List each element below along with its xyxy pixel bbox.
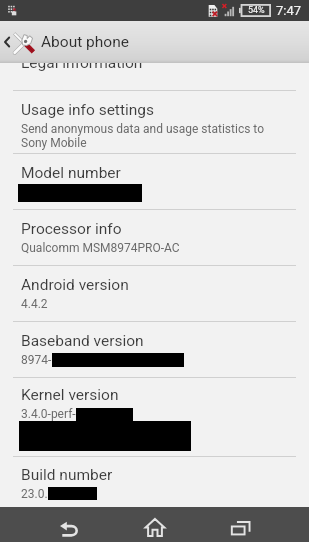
button[interactable]: Baseband version	[0, 322, 309, 377]
button[interactable]: Processor info	[0, 210, 309, 265]
staticText: Send anonymous data and usage statistics…	[21, 122, 264, 136]
button[interactable]: Build number	[0, 457, 309, 507]
staticText: Baseband version	[21, 332, 144, 350]
button[interactable]: Android version	[0, 266, 309, 321]
staticText: 8974-	[21, 353, 52, 367]
staticText: Kernel version	[21, 386, 119, 404]
staticText: Processor info	[21, 220, 122, 238]
staticText: Model number	[21, 164, 121, 182]
button[interactable]: Recent apps	[208, 507, 272, 542]
staticText: 23.0.	[21, 487, 48, 500]
staticText: Qualcomm MSM8974PRO-AC	[21, 241, 180, 255]
button[interactable]: Model number	[0, 154, 309, 209]
button[interactable]: Legal information	[0, 21, 309, 90]
staticText: 4.4.2	[21, 297, 48, 311]
staticText: About phone	[41, 33, 129, 51]
staticText: Legal information	[21, 54, 143, 72]
button[interactable]: Back	[37, 507, 101, 542]
staticText: Build number	[21, 466, 113, 484]
staticText: Usage info settings	[21, 101, 155, 119]
button[interactable]: Usage info settings	[0, 91, 309, 153]
staticText: 3.4.0-perf-	[21, 407, 76, 421]
staticText: Android version	[21, 276, 129, 294]
button[interactable]: Navigate up: About phone	[0, 21, 309, 63]
staticText: Sony Mobile	[21, 136, 87, 150]
button[interactable]: Kernel version	[0, 378, 309, 456]
staticText: 7:47	[276, 3, 302, 18]
staticText: 54%	[248, 5, 265, 16]
button[interactable]: Home	[123, 507, 187, 542]
